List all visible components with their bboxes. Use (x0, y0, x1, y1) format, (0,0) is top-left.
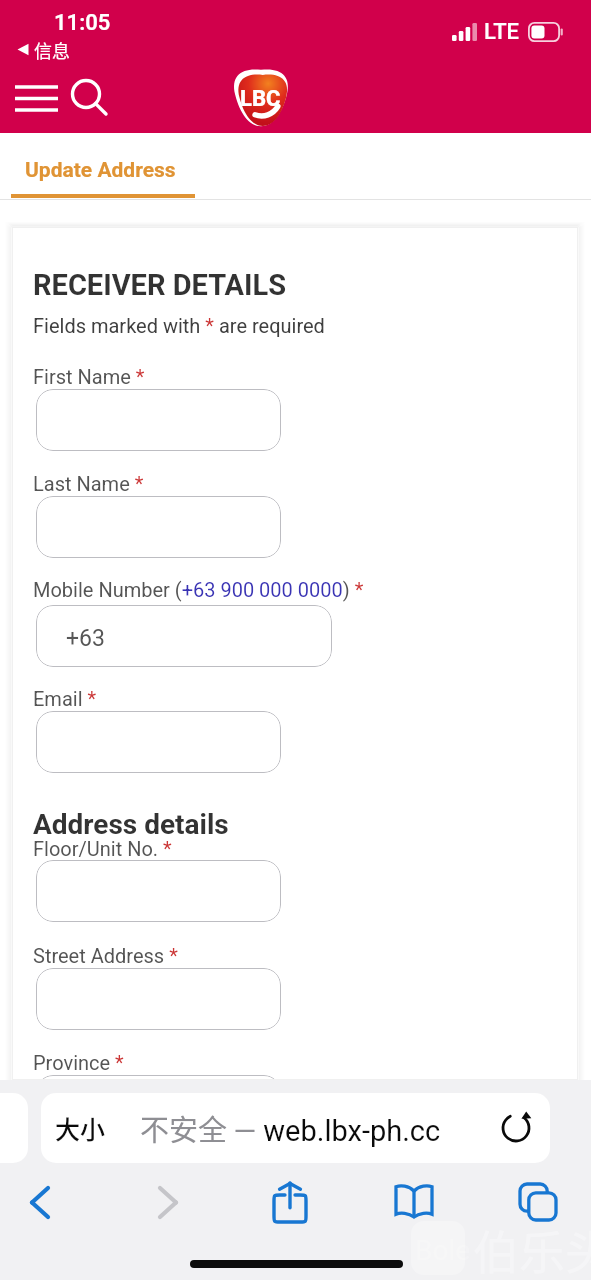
staticText: Mobile Number (+63 900 000 0000) * (33, 578, 364, 601)
button[interactable]: Mobile Number (36, 605, 332, 667)
button[interactable]: Search (65, 73, 115, 123)
staticText: Street Address * (33, 944, 178, 967)
staticText: Floor/Unit No. * (33, 837, 172, 860)
staticText: Update Address (25, 158, 176, 183)
staticText: Fields marked with * are required (33, 314, 325, 337)
button[interactable]: Menu (12, 76, 60, 120)
staticText: First Name * (33, 365, 145, 388)
button[interactable]: Forward (134, 1173, 202, 1231)
staticText: 信息 (34, 37, 70, 63)
staticText: LTE (484, 19, 520, 45)
staticText: RECEIVER DETAILS (33, 268, 287, 302)
button[interactable]: Share (256, 1173, 324, 1231)
button[interactable]: Floor/Unit No. (36, 860, 281, 922)
button[interactable]: Province (36, 1075, 281, 1137)
button[interactable]: First Name (36, 389, 281, 451)
button[interactable]: Email (36, 711, 281, 773)
button[interactable]: 大小 (41, 1093, 550, 1163)
button[interactable]: Bookmarks (380, 1173, 448, 1231)
button[interactable]: Street Address (36, 968, 281, 1030)
button[interactable]: Last Name (36, 496, 281, 558)
staticText: Email * (33, 687, 97, 710)
button[interactable]: Tabs (504, 1173, 572, 1231)
staticText: LBC (240, 86, 281, 112)
staticText: 伯乐头条 (473, 1216, 591, 1280)
staticText: 大小 (55, 1110, 106, 1146)
staticText: Address details (33, 808, 229, 841)
button[interactable]: Reload (496, 1108, 536, 1148)
staticText: Last Name * (33, 472, 144, 495)
staticText: +63 (66, 625, 105, 652)
staticText: 11:05 (54, 10, 111, 36)
button[interactable]: LBC Home (231, 68, 291, 128)
staticText: Province * (33, 1051, 124, 1074)
button[interactable]: Back (6, 1173, 74, 1231)
staticText: 不安全 — web.lbx-ph.cc (140, 1107, 441, 1149)
button[interactable]: Update Address (12, 138, 195, 200)
